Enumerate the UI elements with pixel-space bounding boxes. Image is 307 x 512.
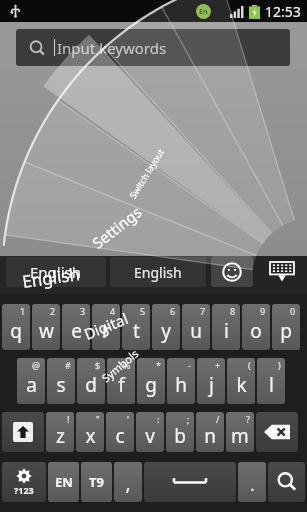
staticText: 5 bbox=[140, 305, 146, 317]
button[interactable]: Search bbox=[268, 462, 305, 502]
button[interactable]: English bbox=[6, 257, 106, 287]
button[interactable]: " bbox=[76, 412, 104, 452]
staticText: z bbox=[56, 423, 65, 449]
button[interactable]: + bbox=[197, 358, 225, 404]
staticText: ; bbox=[187, 413, 190, 425]
staticText: + bbox=[215, 359, 221, 371]
button[interactable]: # bbox=[47, 358, 75, 404]
button[interactable]: Hide keyboard bbox=[263, 256, 301, 287]
button[interactable]: Switch layout bbox=[126, 146, 167, 200]
button[interactable]: 3 bbox=[62, 304, 90, 350]
staticText: y bbox=[161, 318, 171, 344]
staticText: 1 bbox=[20, 305, 26, 317]
staticText: English bbox=[21, 262, 81, 293]
staticText: T9 bbox=[89, 473, 104, 491]
staticText: @ bbox=[32, 359, 41, 371]
staticText: h bbox=[175, 372, 187, 398]
staticText: 2 bbox=[50, 305, 56, 317]
staticText: d bbox=[85, 372, 97, 398]
button[interactable]: * bbox=[137, 358, 165, 404]
button[interactable]: ? bbox=[226, 412, 254, 452]
staticText: Digital bbox=[81, 308, 131, 344]
staticText: n bbox=[204, 423, 216, 449]
staticText: # bbox=[65, 359, 71, 371]
staticText: % bbox=[123, 359, 131, 371]
staticText: ! bbox=[67, 413, 70, 425]
button[interactable]: . bbox=[238, 462, 266, 502]
staticText: m bbox=[231, 423, 249, 449]
staticText: 9 bbox=[260, 305, 266, 317]
button[interactable]: : bbox=[136, 412, 164, 452]
staticText: r bbox=[102, 318, 110, 344]
button[interactable]: 1 bbox=[2, 304, 30, 350]
button[interactable]: Digital bbox=[81, 308, 131, 344]
button[interactable]: Symbols bbox=[98, 346, 142, 385]
button[interactable]: 7 bbox=[182, 304, 210, 350]
staticText: , bbox=[125, 470, 131, 496]
staticText: t bbox=[133, 318, 140, 344]
staticText: f bbox=[118, 372, 125, 398]
button[interactable]: English bbox=[110, 257, 206, 287]
staticText: " bbox=[96, 413, 100, 425]
button[interactable]: ' bbox=[106, 412, 134, 452]
staticText: o bbox=[250, 318, 262, 344]
button[interactable]: ! bbox=[46, 412, 74, 452]
staticText: ) bbox=[278, 359, 281, 371]
staticText: Settings bbox=[88, 201, 146, 253]
staticText: j bbox=[209, 372, 214, 398]
button[interactable]: 9 bbox=[242, 304, 270, 350]
button[interactable]: - bbox=[167, 358, 195, 404]
button[interactable]: ; bbox=[166, 412, 194, 452]
staticText: s bbox=[56, 372, 66, 398]
staticText: g bbox=[145, 372, 157, 398]
staticText: k bbox=[236, 372, 247, 398]
staticText: e bbox=[71, 318, 82, 344]
staticText: 3 bbox=[80, 305, 86, 317]
button[interactable]: 8 bbox=[212, 304, 240, 350]
button[interactable]: English bbox=[21, 262, 81, 293]
button[interactable]: 2 bbox=[32, 304, 60, 350]
staticText: EN bbox=[55, 473, 73, 491]
button[interactable]: EN bbox=[48, 462, 79, 502]
button[interactable]: $ bbox=[77, 358, 105, 404]
staticText: Switch layout bbox=[126, 146, 167, 200]
button[interactable]: Input keywords bbox=[16, 29, 290, 66]
staticText: i bbox=[224, 318, 229, 344]
staticText: 7 bbox=[200, 305, 206, 317]
button[interactable]: @ bbox=[17, 358, 45, 404]
button[interactable]: T9 bbox=[81, 462, 112, 502]
staticText: / bbox=[216, 413, 220, 425]
staticText: English bbox=[30, 262, 82, 282]
staticText: ( bbox=[248, 359, 251, 371]
staticText: 4 bbox=[110, 305, 116, 317]
button[interactable]: Emoji bbox=[211, 256, 253, 287]
staticText: Input keywords bbox=[57, 38, 167, 58]
staticText: x bbox=[85, 423, 96, 449]
button[interactable]: Shift bbox=[2, 412, 44, 452]
button[interactable]: 4 bbox=[92, 304, 120, 350]
button[interactable]: Symbols and settings bbox=[2, 462, 46, 502]
button[interactable]: 5 bbox=[122, 304, 150, 350]
staticText: . bbox=[250, 474, 255, 496]
staticText: 0 bbox=[290, 305, 296, 317]
button[interactable]: 6 bbox=[152, 304, 180, 350]
button[interactable]: / bbox=[196, 412, 224, 452]
staticText: : bbox=[157, 413, 160, 425]
staticText: Symbols bbox=[98, 346, 142, 385]
button[interactable]: % bbox=[107, 358, 135, 404]
staticText: w bbox=[39, 318, 54, 344]
staticText: p bbox=[280, 318, 292, 344]
staticText: 6 bbox=[170, 305, 176, 317]
staticText: English bbox=[134, 263, 182, 282]
button[interactable]: 0 bbox=[272, 304, 300, 350]
button[interactable]: , bbox=[114, 462, 142, 502]
button[interactable]: ( bbox=[227, 358, 255, 404]
staticText: - bbox=[188, 359, 191, 371]
staticText: a bbox=[26, 372, 37, 398]
button[interactable]: ) bbox=[257, 358, 285, 404]
button[interactable]: Space bbox=[144, 462, 236, 502]
staticText: * bbox=[156, 359, 161, 371]
button[interactable]: Settings bbox=[88, 201, 146, 253]
button[interactable]: Backspace bbox=[256, 412, 298, 452]
staticText: l bbox=[269, 372, 274, 398]
